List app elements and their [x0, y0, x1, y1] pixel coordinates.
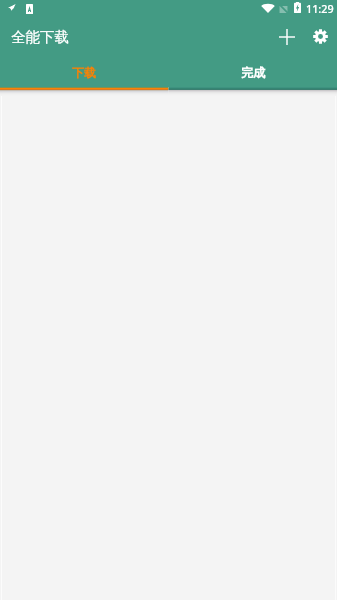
button[interactable]: Settings — [306, 22, 335, 51]
button[interactable]: 下载 — [0, 52, 168, 90]
button[interactable]: 完成 — [168, 52, 337, 90]
staticText: 下载 — [72, 65, 96, 80]
staticText: 完成 — [241, 65, 265, 80]
button[interactable]: Add — [272, 22, 301, 51]
staticText: 11:29 — [306, 1, 334, 16]
staticText: 全能下载 — [11, 28, 69, 46]
